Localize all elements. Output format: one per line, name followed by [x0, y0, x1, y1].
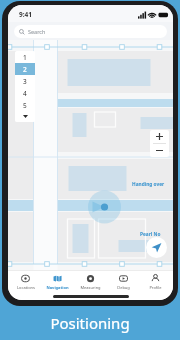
staticText: Debug: [117, 285, 130, 290]
staticText: Profile: [149, 285, 162, 290]
button[interactable]: Measuring: [75, 274, 106, 290]
button[interactable]: Debug: [108, 274, 139, 290]
staticText: 5: [23, 101, 27, 110]
button[interactable]: 5: [15, 99, 35, 111]
button[interactable]: Profile: [140, 274, 171, 290]
staticText: 4: [23, 89, 27, 98]
staticText: Handing over: [132, 181, 165, 188]
staticText: Locations: [17, 285, 35, 290]
button[interactable]: Navigate: [146, 237, 167, 258]
button[interactable]: Zoom in: [150, 130, 169, 143]
button[interactable]: 3: [15, 75, 35, 87]
button[interactable]: 4: [15, 87, 35, 99]
button[interactable]: Locations: [10, 274, 41, 290]
button[interactable]: More floors: [15, 111, 35, 122]
button[interactable]: 1: [15, 51, 35, 63]
staticText: 9:41: [19, 10, 32, 19]
button[interactable]: 2: [15, 63, 35, 75]
staticText: Search: [28, 28, 46, 35]
button[interactable]: Search: [14, 25, 167, 38]
staticText: Pearl No: [140, 231, 161, 238]
staticText: Positioning: [50, 313, 130, 333]
staticText: 3: [23, 77, 27, 86]
button[interactable]: Navigation: [42, 274, 73, 290]
button[interactable]: Zoom out: [150, 144, 169, 157]
staticText: Measuring: [80, 285, 101, 290]
staticText: 1: [23, 53, 27, 62]
staticText: 2: [23, 65, 27, 74]
staticText: Navigation: [46, 285, 69, 290]
